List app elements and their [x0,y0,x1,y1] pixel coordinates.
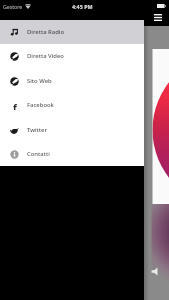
staticText: Facebook [27,101,54,109]
staticText: Gestore [3,3,23,10]
button[interactable]: Diretta Radio [0,20,144,44]
staticText: f [13,101,17,110]
staticText: Diretta Video [27,52,64,60]
staticText: Contatti [27,150,50,158]
button[interactable]: Contatti [0,142,144,166]
button[interactable]: Diretta Video [0,44,144,68]
staticText: Sito Web [27,77,52,85]
staticText: Diretta Radio [27,28,64,36]
button[interactable]: Open navigation menu [152,11,164,23]
button[interactable]: Twitter [0,118,144,142]
staticText: 4:45 PM [72,3,93,10]
button[interactable]: Sito Web [0,69,144,93]
staticText: Twitter [27,126,47,134]
button[interactable]: f [0,93,144,117]
button[interactable]: Volume [150,266,161,277]
